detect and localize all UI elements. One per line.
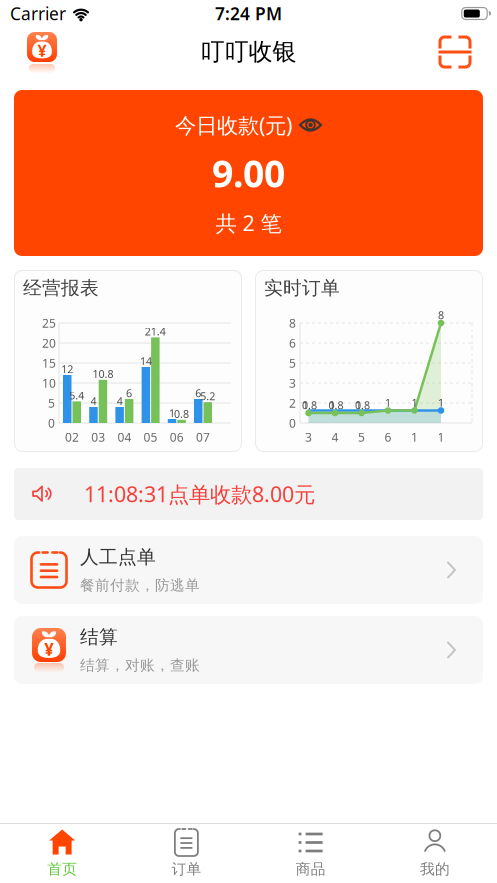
staticText: 叮叮收银 xyxy=(200,37,296,66)
staticText: 今日收款(元) xyxy=(175,111,292,139)
staticText: 3 xyxy=(289,375,296,391)
staticText: 实时订单 xyxy=(264,276,340,299)
staticText: 结算，对账，查账 xyxy=(80,656,200,674)
staticText: 0.8 xyxy=(328,398,343,412)
staticText: 05 xyxy=(144,429,158,445)
staticText: 1 xyxy=(302,398,308,412)
button[interactable]: 首页 xyxy=(0,829,124,878)
staticText: 4 xyxy=(117,394,123,408)
staticText: 订单 xyxy=(171,860,201,878)
staticText: 4 xyxy=(90,394,96,408)
staticText: ¥ xyxy=(37,40,46,61)
staticText: 0.8 xyxy=(355,398,370,412)
staticText: 3 xyxy=(305,429,312,445)
staticText: 人工点单 xyxy=(80,545,156,568)
staticText: 商品 xyxy=(296,860,326,878)
staticText: 7:24 PM xyxy=(215,2,282,25)
staticText: 1 xyxy=(169,406,175,420)
staticText: 12 xyxy=(61,362,73,376)
staticText: 02 xyxy=(65,429,79,445)
staticText: 5.4 xyxy=(69,388,84,402)
staticText: 6 xyxy=(126,386,132,400)
staticText: 14 xyxy=(140,354,152,368)
button[interactable]: 我的 xyxy=(373,829,497,878)
staticText: 1 xyxy=(329,398,335,412)
staticText: 5 xyxy=(48,395,55,411)
staticText: 5 xyxy=(358,429,365,445)
staticText: 06 xyxy=(170,429,184,445)
staticText: 我的 xyxy=(420,860,450,878)
staticText: 25 xyxy=(42,315,56,331)
staticText: 6 xyxy=(195,386,201,400)
staticText: 2 xyxy=(289,395,296,411)
button[interactable]: 扫码收款 xyxy=(440,37,470,67)
button[interactable]: 订单 xyxy=(124,829,248,878)
staticText: 15 xyxy=(42,355,56,371)
button[interactable]: 人工点单 xyxy=(14,536,483,604)
staticText: 首页 xyxy=(47,860,77,878)
button[interactable]: 应用图标 xyxy=(27,32,57,73)
staticText: 1 xyxy=(411,429,418,445)
staticText: ¥ xyxy=(44,637,54,660)
staticText: 4 xyxy=(331,429,338,445)
staticText: 0 xyxy=(289,415,296,431)
staticText: 04 xyxy=(117,429,131,445)
staticText: 1 xyxy=(355,398,361,412)
staticText: 8 xyxy=(438,308,444,322)
staticText: 5 xyxy=(289,355,296,371)
staticText: 11:08:31点单收款8.00元 xyxy=(84,480,315,508)
staticText: 经营报表 xyxy=(23,276,99,299)
staticText: 5.2 xyxy=(200,389,215,403)
staticText: 1 xyxy=(385,395,391,410)
staticText: 1 xyxy=(411,395,417,410)
staticText: 共 2 笔 xyxy=(215,209,281,237)
staticText: 结算 xyxy=(80,625,118,648)
staticText: 9.00 xyxy=(212,148,285,198)
staticText: 10.8 xyxy=(92,367,113,381)
staticText: 6 xyxy=(384,429,391,445)
staticText: 餐前付款，防逃单 xyxy=(80,576,200,594)
staticText: 0 xyxy=(48,415,55,431)
button[interactable]: 隐藏金额 xyxy=(299,118,322,131)
button[interactable]: 商品 xyxy=(248,829,373,878)
staticText: 0.8 xyxy=(302,398,317,412)
staticText: 21.4 xyxy=(145,324,166,338)
button[interactable]: ¥ xyxy=(14,616,483,684)
staticText: 07 xyxy=(196,429,210,445)
staticText: 20 xyxy=(42,335,56,351)
staticText: 1 xyxy=(437,429,444,445)
staticText: Carrier xyxy=(10,2,66,25)
staticText: 0.8 xyxy=(174,407,189,421)
staticText: 6 xyxy=(289,335,296,351)
staticText: 03 xyxy=(91,429,105,445)
staticText: 8 xyxy=(289,315,296,331)
staticText: 10 xyxy=(42,375,56,391)
staticText: 1 xyxy=(438,395,444,410)
